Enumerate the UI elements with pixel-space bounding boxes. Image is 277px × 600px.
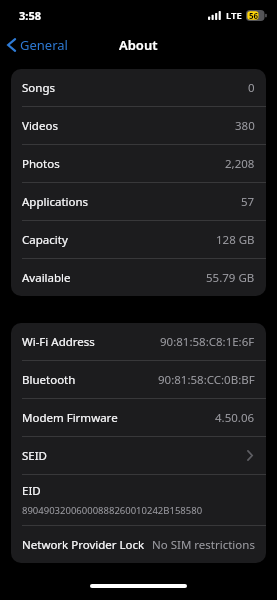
staticText: 380 [235, 118, 255, 134]
staticText: 128 GB [216, 232, 255, 248]
staticText: 90:81:58:CC:0B:BF [158, 372, 255, 388]
staticText: General [20, 36, 68, 54]
staticText: About [119, 36, 158, 54]
button[interactable]: Available [11, 259, 266, 296]
staticText: 56 [249, 10, 259, 21]
button[interactable]: Applications [11, 183, 266, 221]
staticText: No SIM restrictions [152, 537, 255, 553]
button[interactable]: Photos [11, 145, 266, 183]
button[interactable]: Modem Firmware [11, 399, 266, 437]
staticText: Network Provider Lock [22, 537, 145, 553]
staticText: Songs [22, 80, 55, 96]
staticText: Videos [22, 118, 58, 134]
staticText: 90:81:58:C8:1E:6F [160, 334, 255, 350]
staticText: 89049032006000888260010242B158580 [22, 504, 203, 517]
staticText: Wi-Fi Address [22, 334, 95, 350]
staticText: Bluetooth [22, 372, 76, 388]
staticText: 57 [241, 194, 255, 210]
staticText: Applications [22, 194, 89, 210]
button[interactable]: Bluetooth [11, 361, 266, 399]
staticText: 3:58 [19, 8, 41, 23]
button[interactable]: Videos [11, 107, 266, 145]
staticText: EID [22, 483, 41, 499]
staticText: SEID [22, 448, 48, 464]
staticText: 55.79 GB [206, 270, 255, 286]
button[interactable]: Wi-Fi Address [11, 323, 266, 361]
button[interactable]: Network Provider Lock [11, 526, 266, 563]
staticText: Photos [22, 156, 60, 172]
button[interactable]: SEID [11, 437, 266, 475]
staticText: Capacity [22, 232, 68, 248]
staticText: Modem Firmware [22, 410, 118, 426]
button[interactable]: Songs [11, 69, 266, 107]
staticText: 2,208 [225, 156, 255, 172]
button[interactable]: EID [11, 475, 266, 526]
other: SEID details [247, 450, 253, 461]
staticText: 4.50.06 [215, 410, 255, 426]
button[interactable]: Capacity [11, 221, 266, 259]
staticText: Available [22, 270, 71, 286]
staticText: 0 [248, 80, 255, 96]
button[interactable]: General [0, 32, 76, 58]
staticText: LTE [226, 9, 242, 22]
